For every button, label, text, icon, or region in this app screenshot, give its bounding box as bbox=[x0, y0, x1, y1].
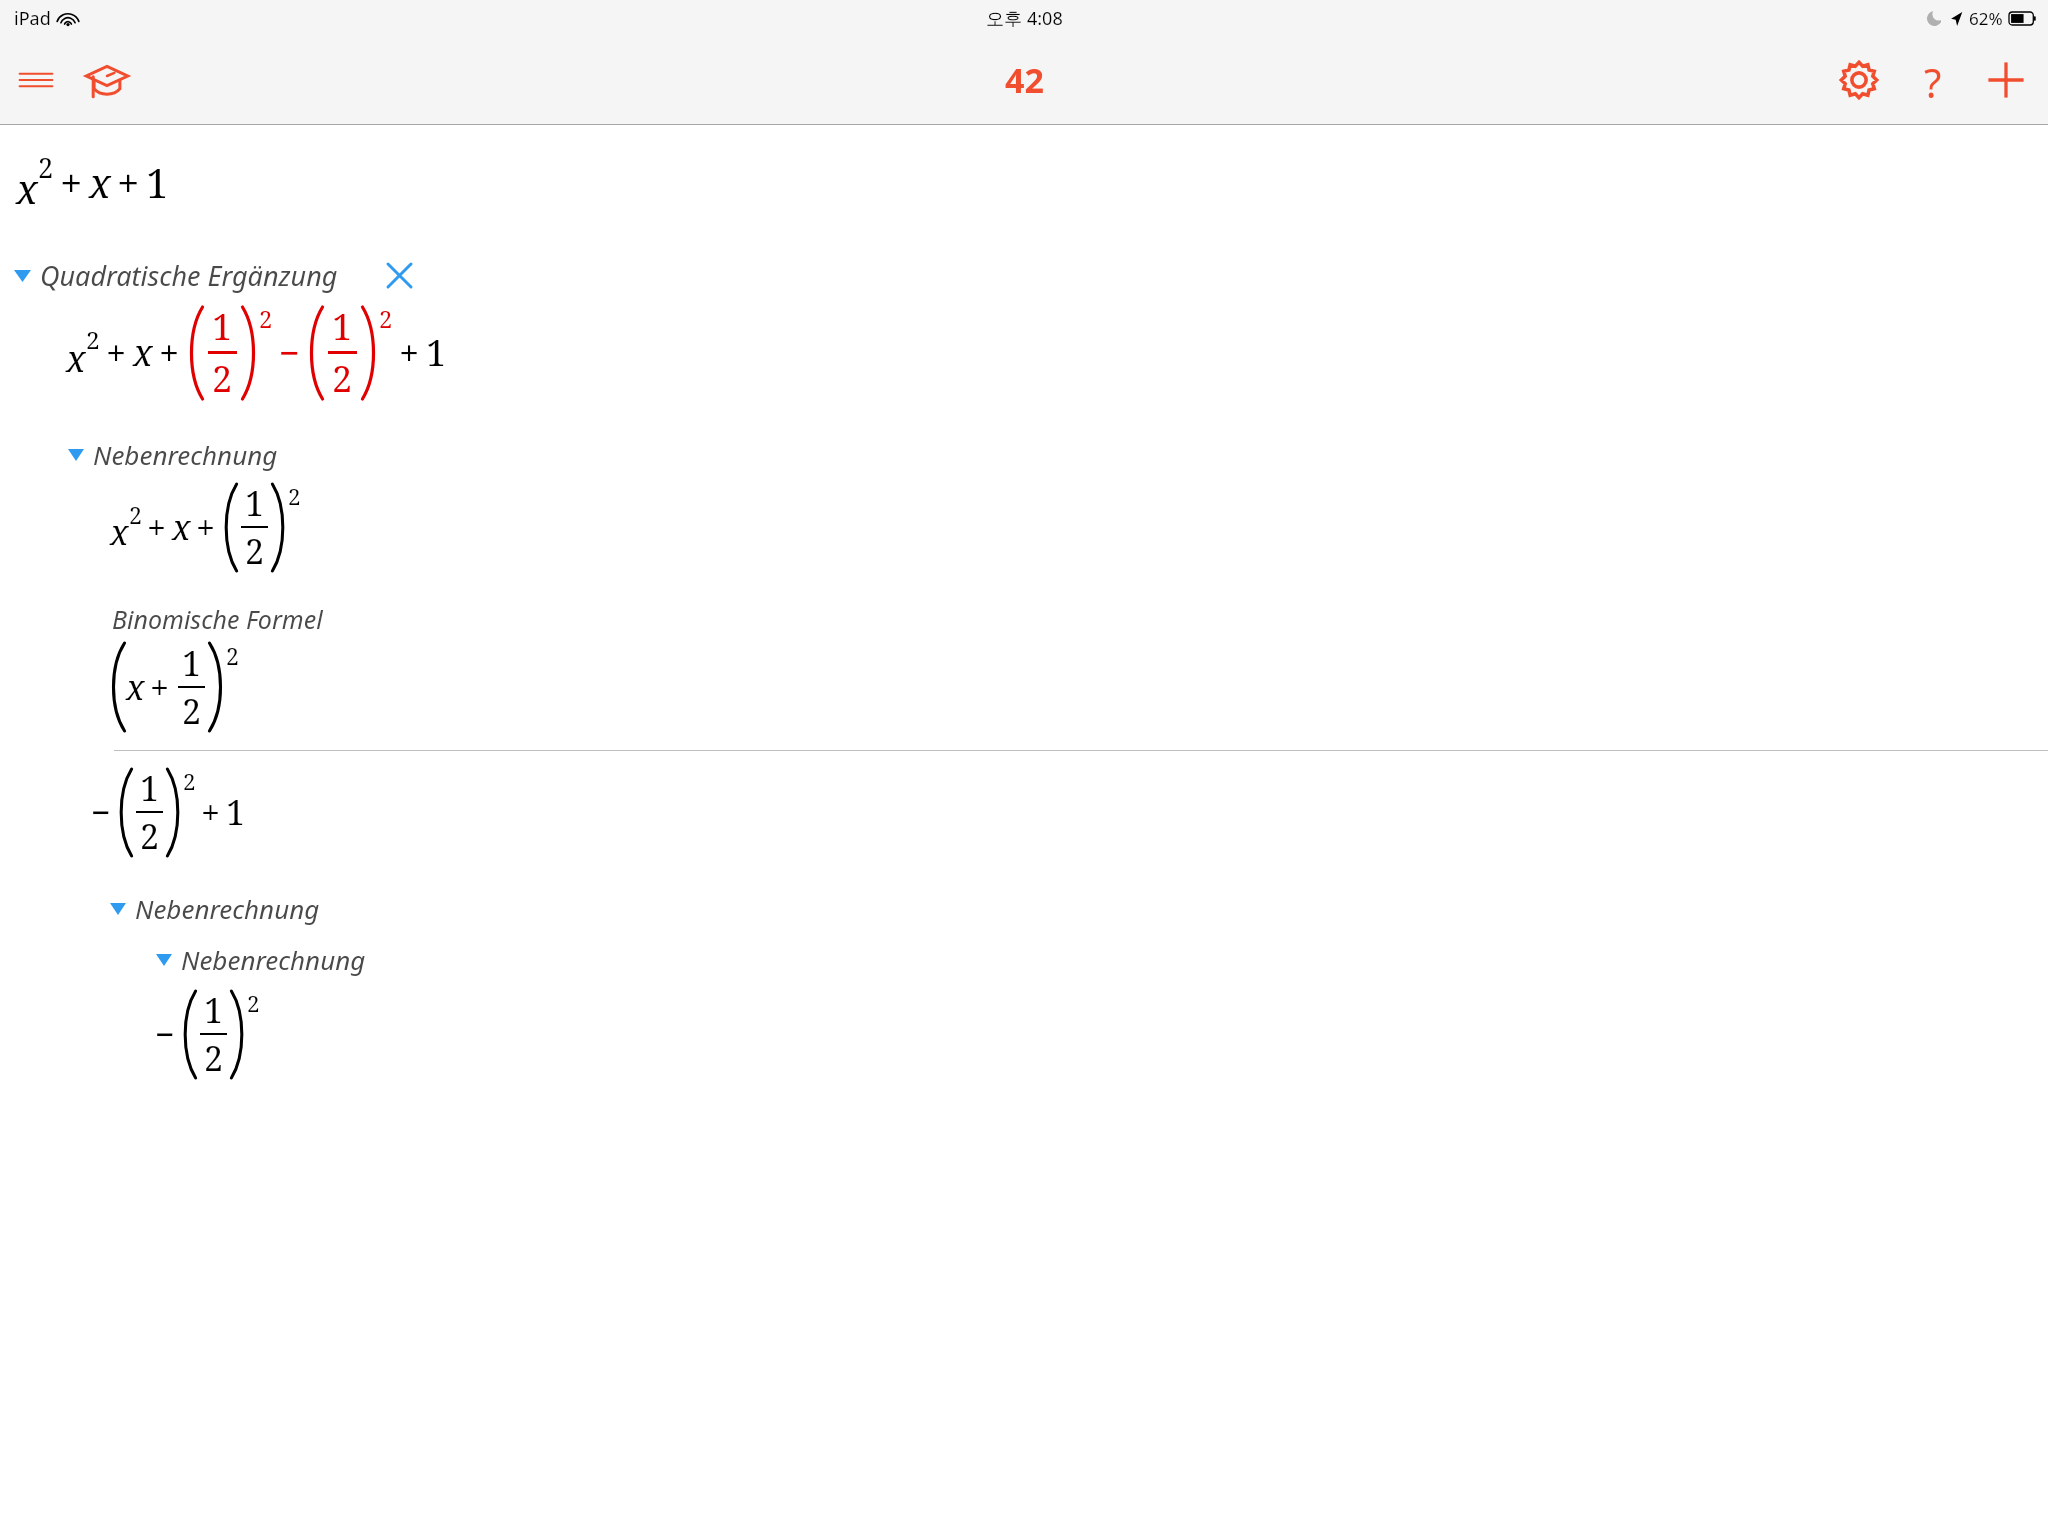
staticText: Nebenrechnung bbox=[181, 942, 366, 977]
button[interactable]: x bbox=[110, 480, 301, 574]
button[interactable]: Nebenrechnung bbox=[68, 437, 2048, 472]
staticText: 1 bbox=[226, 789, 246, 835]
button[interactable]: x bbox=[108, 640, 239, 734]
button[interactable]: Close bbox=[379, 255, 420, 296]
staticText: 2 bbox=[204, 1035, 224, 1081]
staticText: 1 bbox=[182, 640, 202, 686]
staticText: 1 bbox=[332, 302, 353, 351]
staticText: 2 bbox=[86, 323, 100, 356]
staticText: + bbox=[201, 789, 221, 835]
staticText: 1 bbox=[146, 155, 169, 209]
staticText: x bbox=[16, 161, 38, 215]
button[interactable]: x bbox=[16, 149, 169, 215]
staticText: x bbox=[66, 334, 86, 383]
staticText: iPad bbox=[14, 6, 51, 31]
staticText: 2 bbox=[332, 354, 353, 403]
staticText: + bbox=[150, 664, 170, 710]
staticText: 1 bbox=[426, 328, 447, 377]
button[interactable]: Tutorials bbox=[80, 53, 134, 107]
staticText: + bbox=[196, 504, 216, 550]
button[interactable]: Help bbox=[1908, 55, 1958, 105]
staticText: 2 bbox=[212, 354, 233, 403]
staticText: 1 bbox=[212, 302, 233, 351]
staticText: + bbox=[106, 328, 127, 377]
staticText: x bbox=[89, 155, 111, 209]
button[interactable]: Menu bbox=[10, 54, 62, 106]
staticText: ? bbox=[1924, 55, 1942, 105]
staticText: − bbox=[155, 1011, 175, 1057]
staticText: x bbox=[133, 328, 153, 377]
staticText: Nebenrechnung bbox=[93, 437, 278, 472]
staticText: 1 bbox=[204, 987, 224, 1033]
staticText: 1 bbox=[245, 480, 265, 526]
staticText: 2 bbox=[140, 813, 160, 859]
button[interactable]: − bbox=[150, 987, 260, 1081]
staticText: Nebenrechnung bbox=[135, 891, 320, 926]
staticText: Quadratische Ergänzung bbox=[40, 257, 338, 294]
staticText: − bbox=[279, 328, 300, 377]
button[interactable]: − bbox=[86, 765, 246, 859]
staticText: + bbox=[147, 504, 167, 550]
button[interactable]: x bbox=[66, 302, 447, 403]
button[interactable]: Nebenrechnung bbox=[156, 942, 2048, 977]
staticText: 2 bbox=[226, 640, 239, 671]
staticText: + bbox=[60, 155, 83, 209]
staticText: 2 bbox=[245, 528, 265, 574]
button[interactable]: Add bbox=[1980, 54, 2032, 106]
staticText: 2 bbox=[182, 688, 202, 734]
staticText: x bbox=[110, 509, 129, 555]
button[interactable]: Settings bbox=[1832, 53, 1886, 107]
button[interactable]: 42 bbox=[1005, 57, 1044, 103]
staticText: 2 bbox=[38, 149, 54, 186]
staticText: 2 bbox=[247, 988, 260, 1019]
button[interactable]: Nebenrechnung bbox=[110, 891, 2048, 926]
staticText: − bbox=[91, 789, 111, 835]
button[interactable]: Quadratische Ergänzung bbox=[14, 255, 2048, 296]
staticText: x bbox=[172, 504, 191, 550]
staticText: 2 bbox=[259, 303, 273, 335]
button[interactable]: Binomische Formel bbox=[112, 602, 2048, 636]
staticText: + bbox=[399, 328, 420, 377]
staticText: + bbox=[159, 328, 180, 377]
staticText: Binomische Formel bbox=[112, 602, 323, 636]
staticText: 1 bbox=[140, 765, 160, 811]
staticText: 2 bbox=[183, 766, 196, 797]
staticText: 2 bbox=[129, 499, 142, 530]
staticText: + bbox=[117, 155, 140, 209]
staticText: 오후 4:08 bbox=[986, 6, 1063, 31]
staticText: 2 bbox=[288, 481, 301, 512]
staticText: 62% bbox=[1969, 7, 2003, 30]
staticText: 2 bbox=[379, 303, 393, 335]
staticText: x bbox=[126, 664, 145, 710]
